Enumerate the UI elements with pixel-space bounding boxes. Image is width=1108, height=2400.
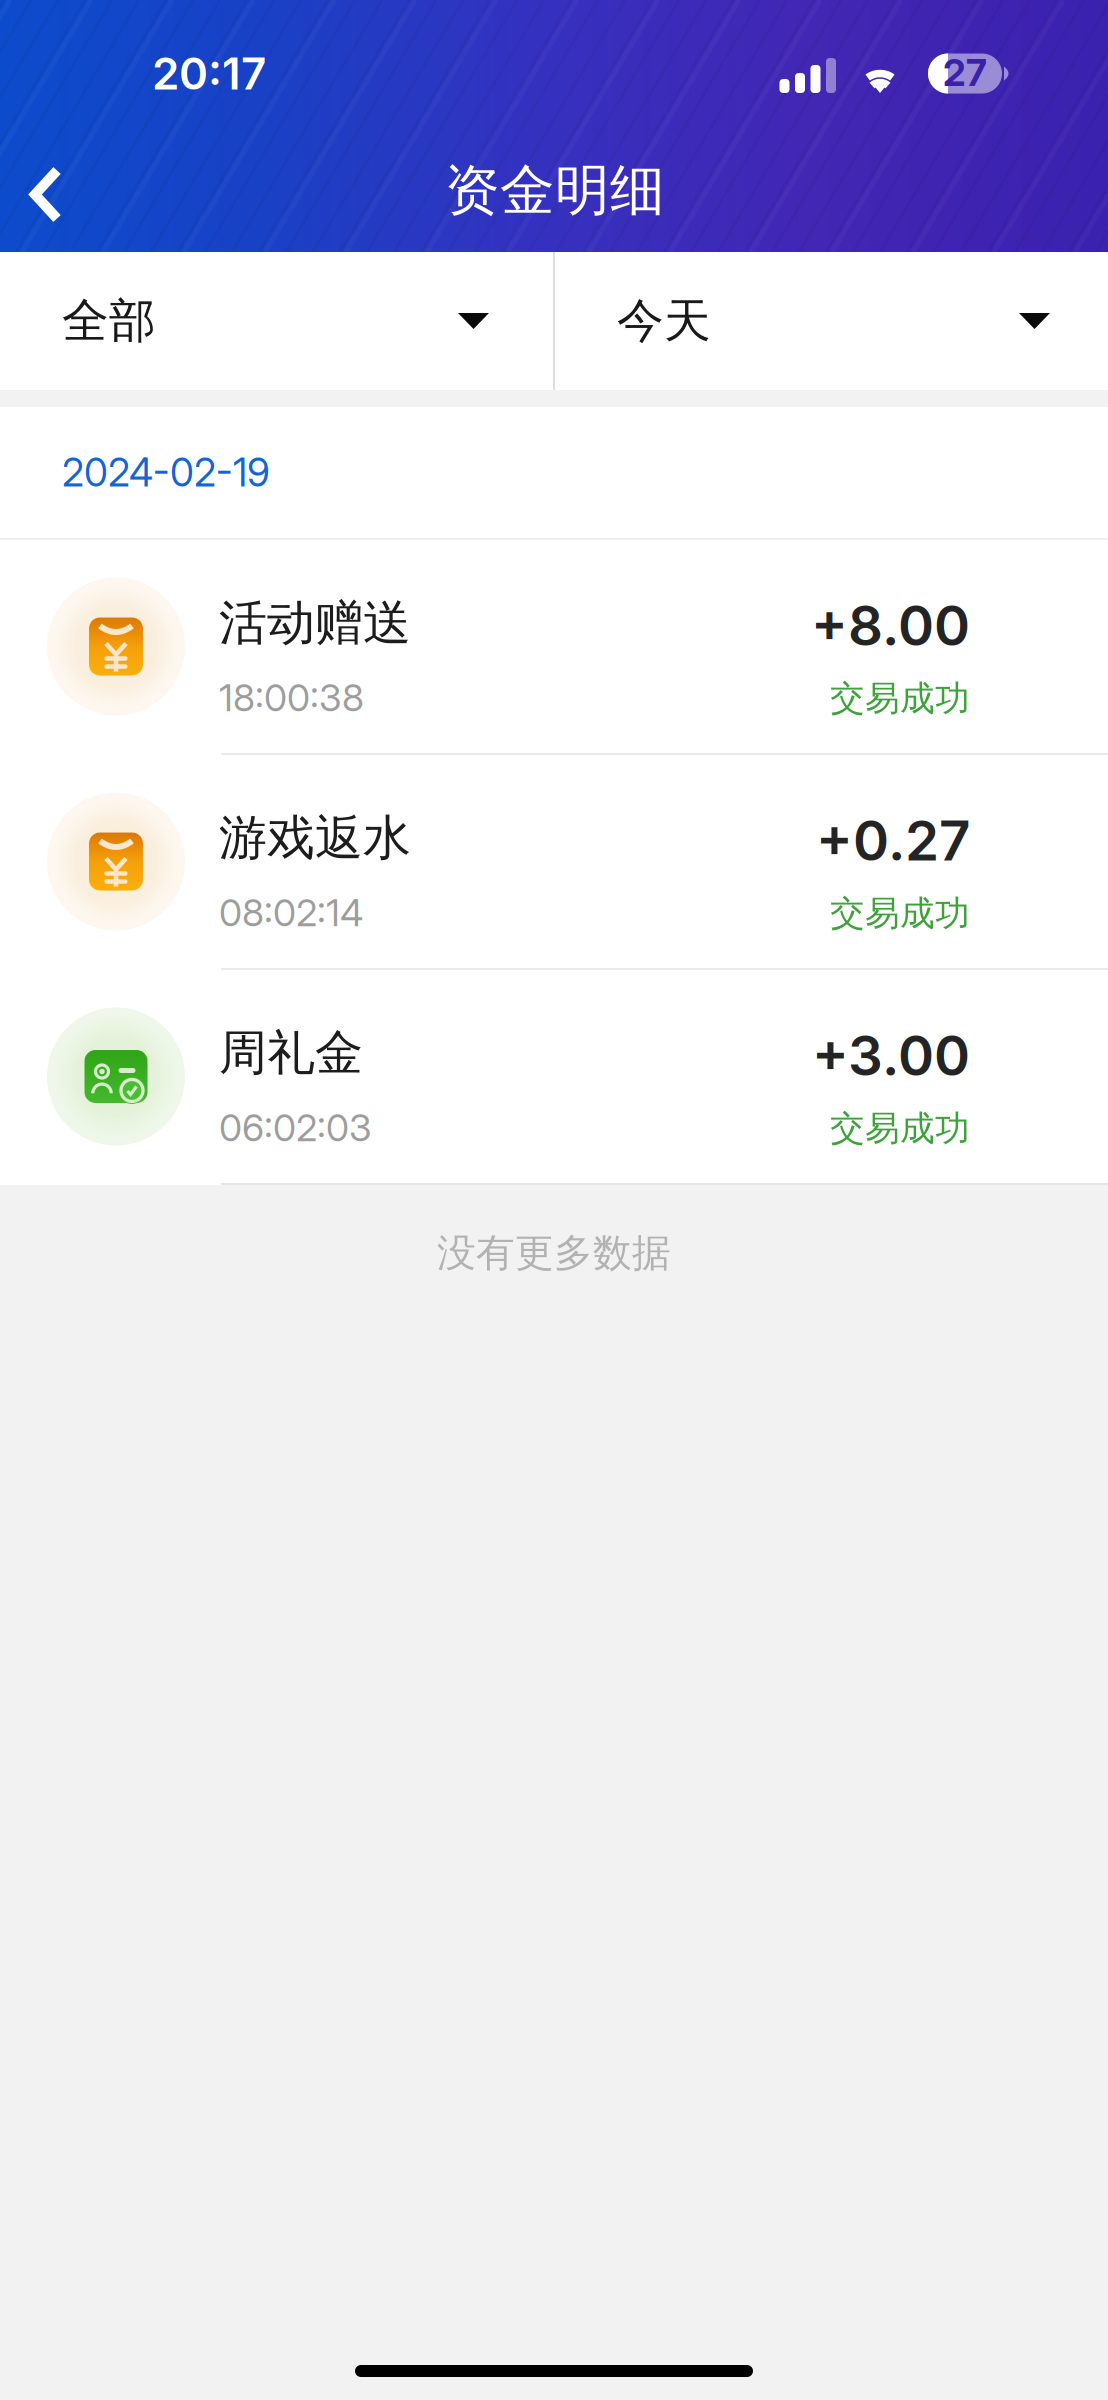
staticText: 2024-02-19 [62,449,270,496]
button[interactable]: 全部 [0,252,553,390]
staticText: 08:02:14 [219,890,363,935]
button[interactable]: Back [0,119,92,229]
staticText: 游戏返水 [219,808,411,868]
staticText: 交易成功 [830,677,970,720]
button[interactable]: 今天 [555,252,1108,390]
staticText: +3.00 [812,1023,970,1089]
staticText: 交易成功 [830,892,970,935]
staticText: 27 [943,50,987,95]
staticText: 活动赠送 [219,593,411,653]
staticText: 20:17 [152,47,266,100]
staticText: +8.00 [811,593,970,659]
button[interactable]: 游戏返水 [0,755,1108,970]
staticText: 全部 [62,292,156,350]
staticText: 资金明细 [445,156,665,225]
staticText: 交易成功 [830,1107,970,1150]
button[interactable]: 活动赠送 [0,540,1108,755]
staticText: 没有更多数据 [437,1229,671,1277]
staticText: +0.27 [816,808,970,874]
staticText: 今天 [617,292,711,350]
button[interactable]: 周礼金 [0,970,1108,1185]
staticText: 周礼金 [219,1023,363,1083]
staticText: 18:00:38 [219,675,364,720]
staticText: 06:02:03 [219,1105,372,1150]
